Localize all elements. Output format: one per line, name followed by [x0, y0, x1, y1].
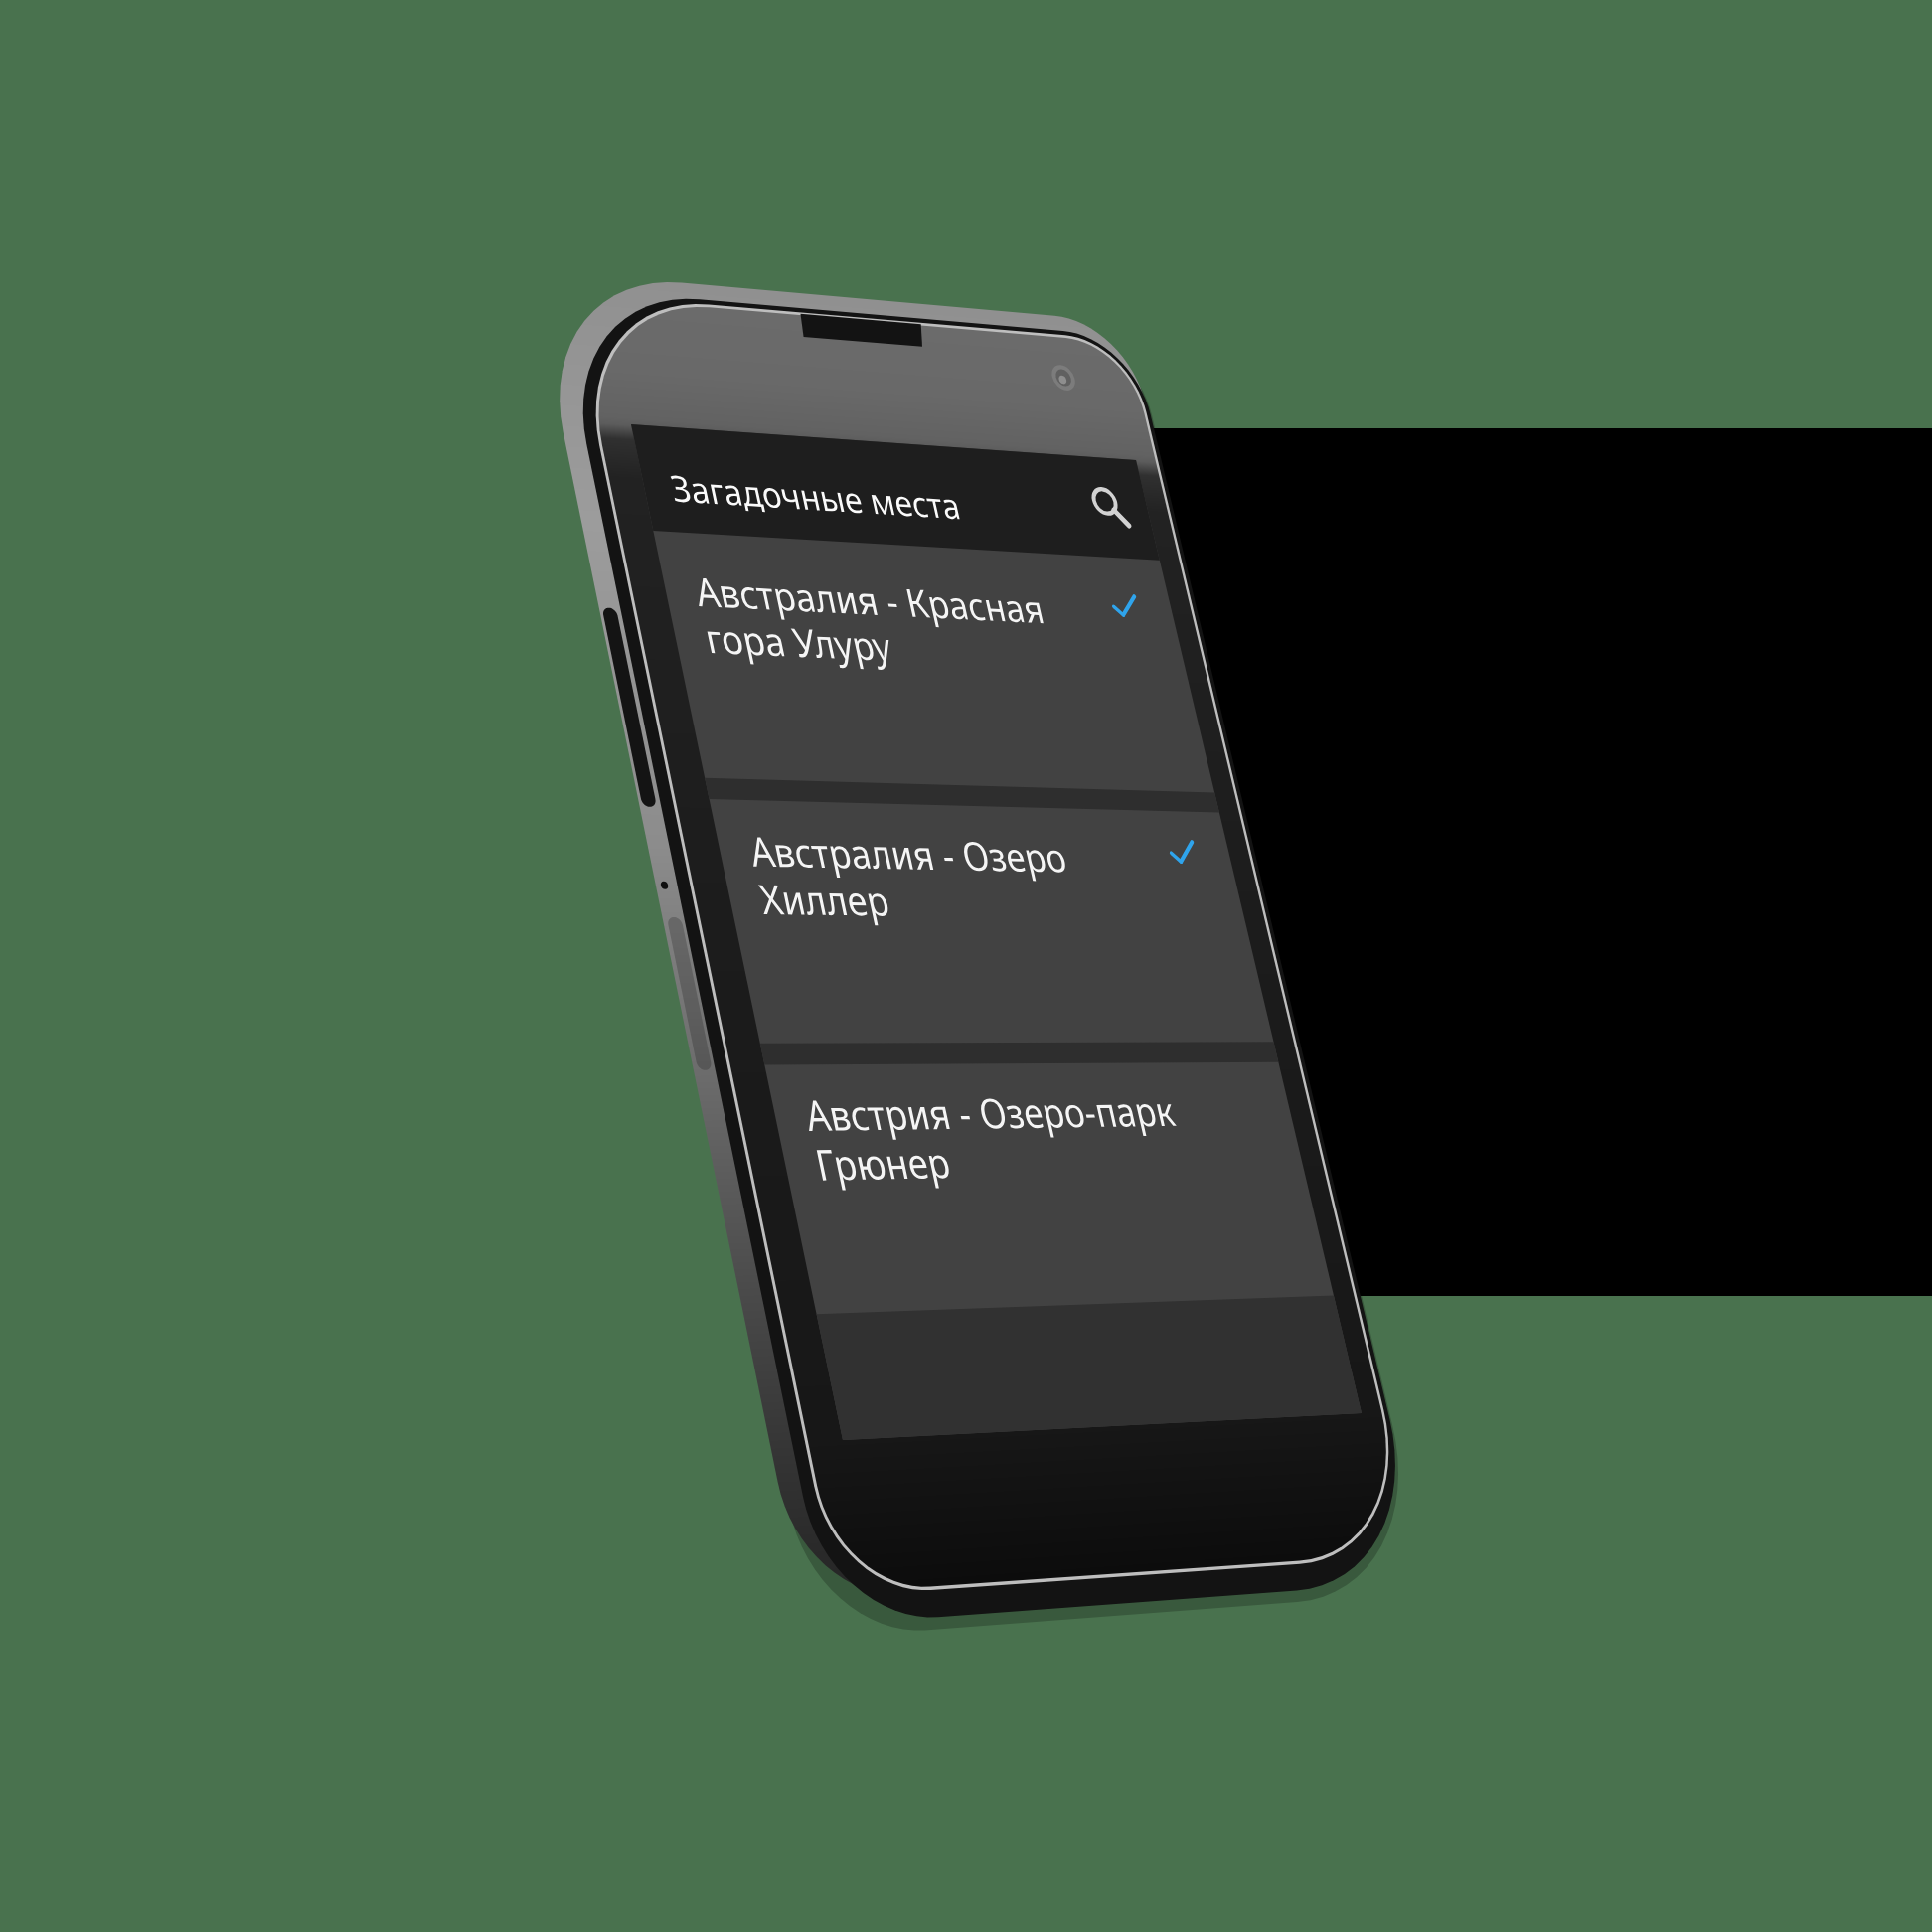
button[interactable]: Австрия - Озеро-парк Грюнер — [764, 1062, 1334, 1314]
other: Mysterious places list on phone — [0, 0, 1932, 1932]
button[interactable]: Австралия - Озеро Хиллер — [710, 799, 1274, 1044]
button[interactable]: Австралия - Красная гора Улуру — [653, 531, 1214, 793]
button[interactable]: Загадочные места — [631, 424, 1160, 561]
button[interactable]: Search — [1072, 469, 1147, 538]
